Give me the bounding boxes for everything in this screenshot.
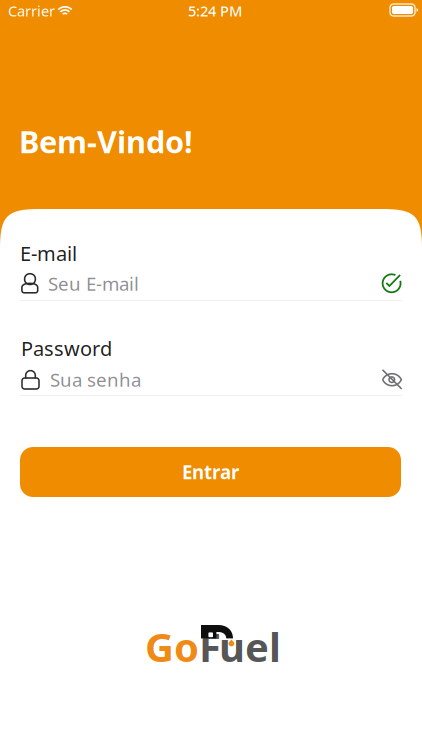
staticText: Carrier [8, 1, 55, 20]
staticText: uel [219, 620, 281, 673]
staticText: Entrar [182, 460, 239, 484]
staticText: Password [21, 335, 112, 362]
button[interactable]: Seu E-mail [21, 273, 402, 294]
button[interactable]: Sua senha [22, 369, 402, 390]
staticText: 5:24 PM [188, 1, 242, 20]
button[interactable]: Entrar [20, 447, 401, 497]
staticText: E-mail [20, 240, 77, 267]
staticText: Seu E-mail [48, 271, 139, 296]
staticText: Go [145, 620, 199, 673]
staticText: F [199, 620, 221, 673]
staticText: Sua senha [50, 367, 141, 392]
staticText: Bem-Vindo! [19, 121, 193, 162]
